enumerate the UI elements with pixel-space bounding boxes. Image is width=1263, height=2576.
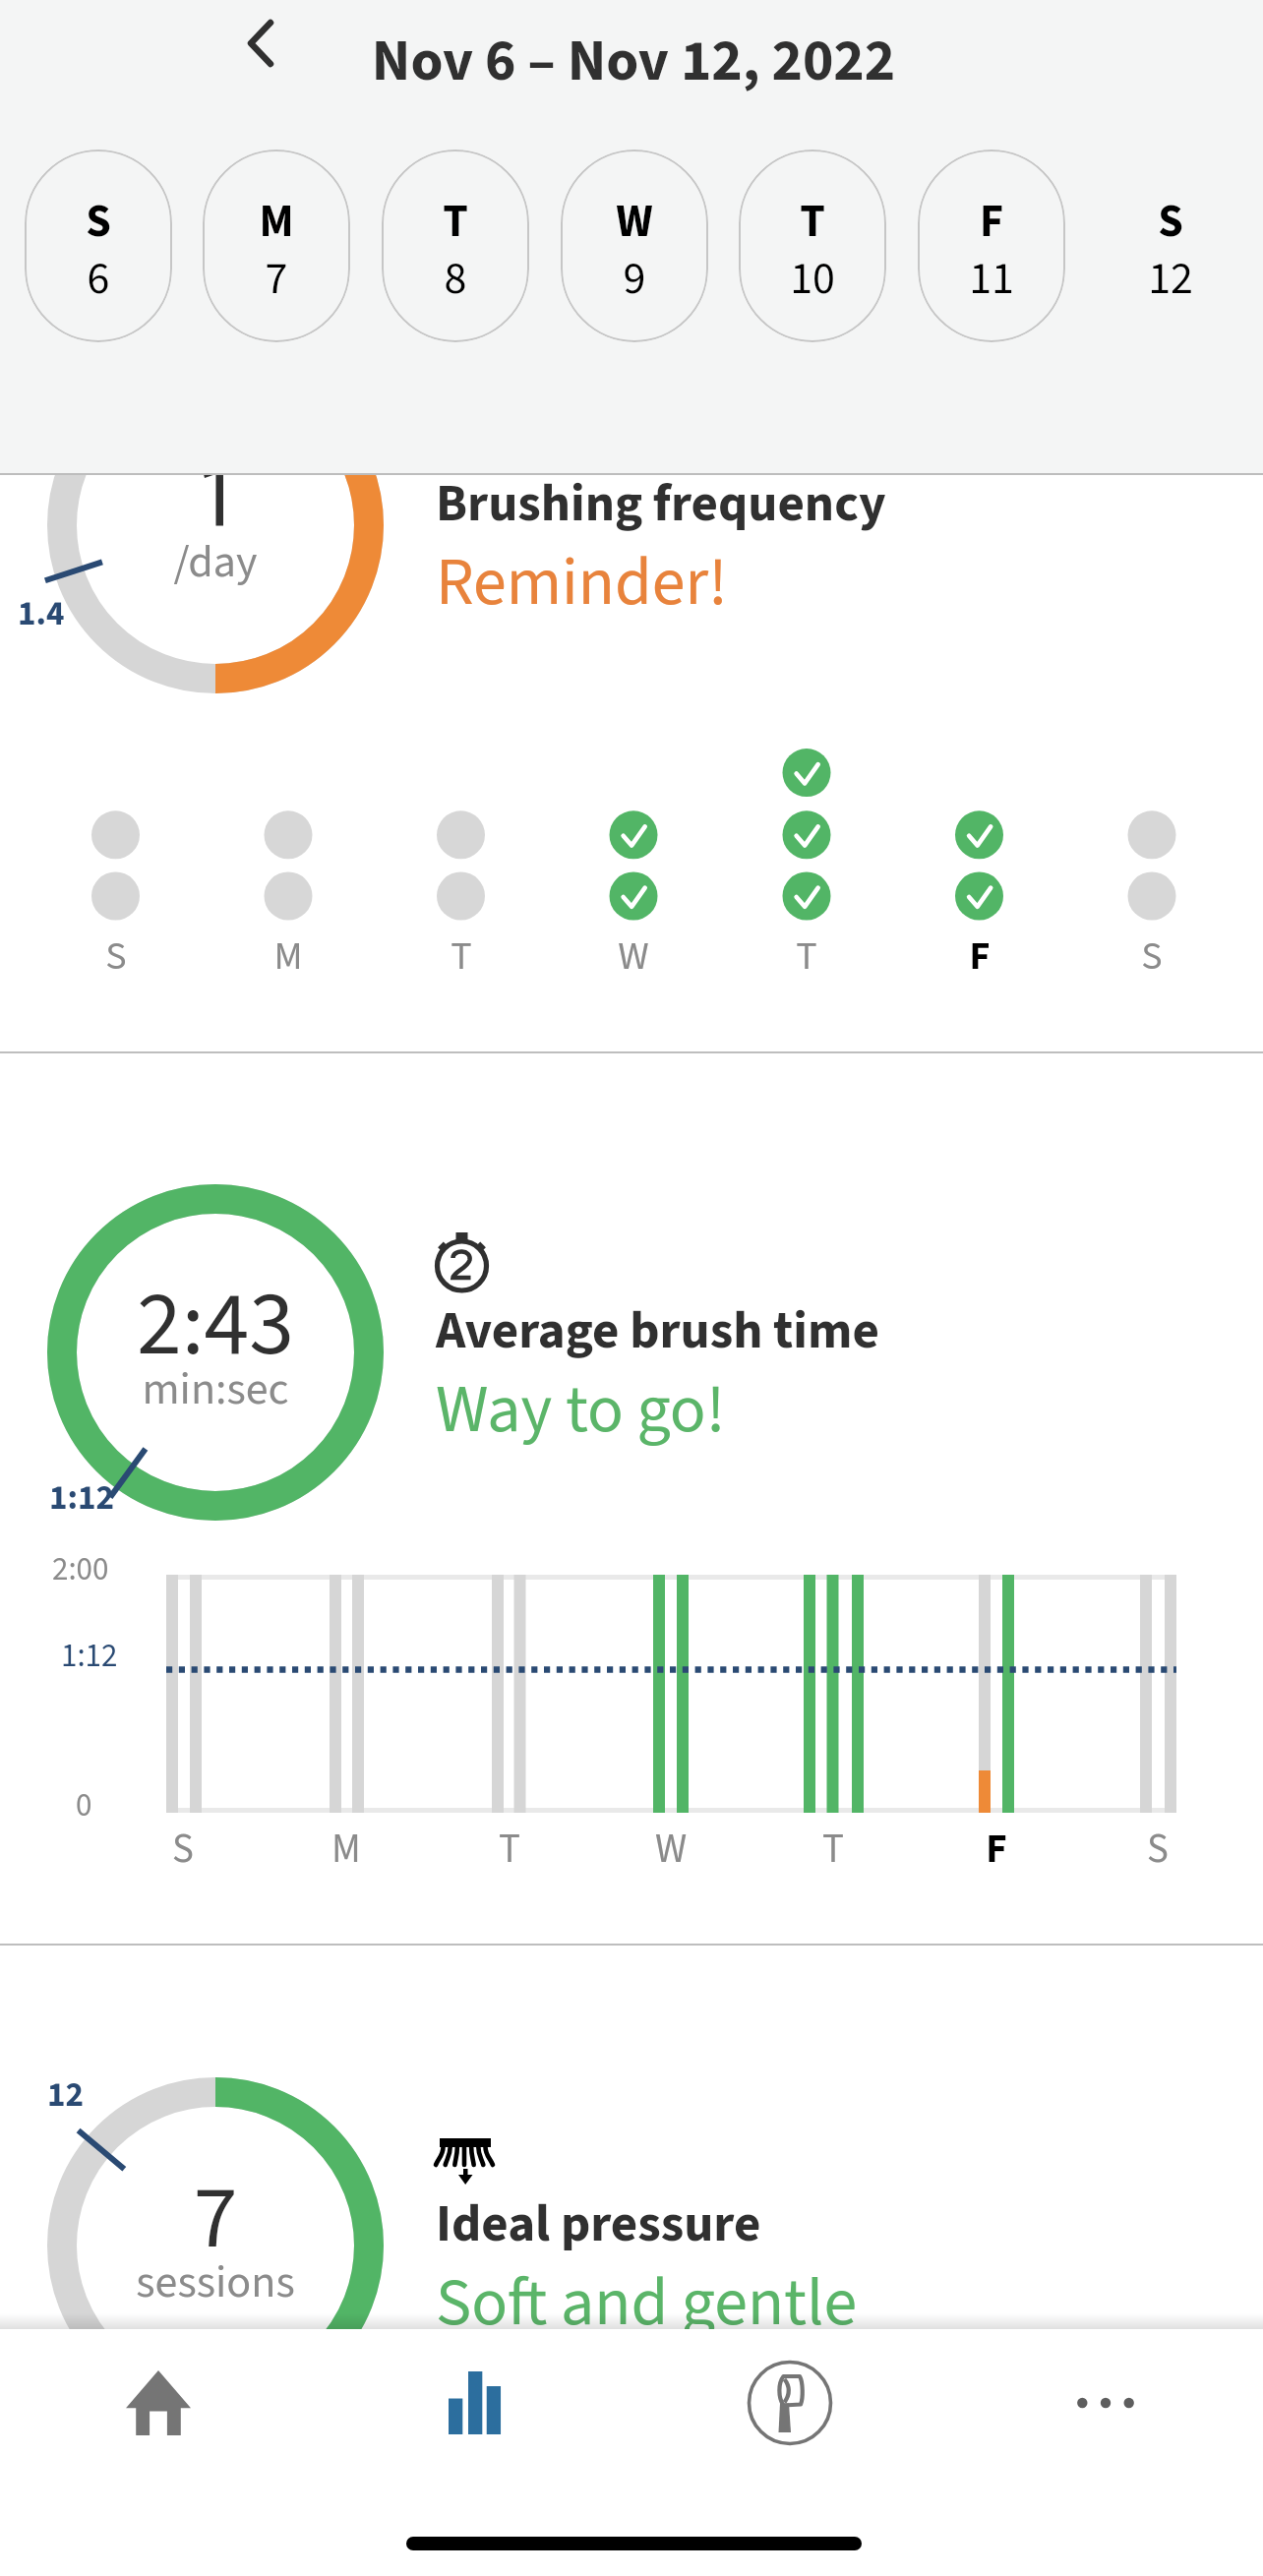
staticText: M — [51, 1821, 641, 1878]
staticText: S — [0, 190, 393, 255]
staticText: Nov 6 – Nov 12, 2022 — [338, 20, 929, 103]
staticText: S — [0, 929, 411, 985]
staticText: T — [166, 929, 756, 985]
staticText: 1:12 — [49, 1473, 114, 1523]
staticText: 2:00 — [52, 1546, 109, 1592]
staticText: Reminder! — [436, 535, 728, 630]
staticText: T — [511, 929, 1102, 985]
staticText: 8 — [160, 247, 751, 312]
button[interactable] — [1097, 150, 1244, 342]
staticText: T — [214, 1821, 805, 1878]
staticText: Soft and gentle — [436, 2255, 858, 2351]
staticText: S — [875, 190, 1263, 255]
staticText: 2:43 — [0, 1261, 511, 1390]
staticText: Brushing frequency — [436, 467, 886, 541]
button[interactable] — [382, 150, 529, 342]
staticText: Way to go! — [436, 1362, 726, 1458]
button[interactable]: Statistics — [316, 2329, 631, 2477]
button[interactable]: Back — [207, 22, 297, 112]
button[interactable]: Home — [0, 2329, 316, 2477]
staticText: 12 — [47, 2070, 84, 2120]
staticText: Ideal pressure — [436, 2187, 761, 2261]
staticText: /day — [0, 530, 511, 595]
staticText: F — [696, 190, 1263, 255]
staticText: S — [863, 1821, 1263, 1878]
staticText: 6 — [0, 247, 393, 312]
staticText: W — [338, 929, 929, 985]
button[interactable]: Brush head — [631, 2329, 947, 2477]
button[interactable] — [739, 150, 886, 342]
staticText: W — [376, 1821, 966, 1878]
staticText: 1:12 — [61, 1633, 118, 1679]
staticText: S — [857, 929, 1263, 985]
staticText: 7 — [0, 2156, 511, 2282]
staticText: 0 — [76, 1782, 92, 1828]
staticText: Average brush time — [436, 1294, 879, 1368]
staticText: 10 — [517, 247, 1108, 312]
staticText: 12 — [875, 247, 1263, 312]
staticText: T — [160, 190, 751, 255]
staticText: T — [517, 190, 1108, 255]
staticText: sessions — [0, 2250, 511, 2315]
button[interactable] — [25, 150, 172, 342]
button[interactable] — [561, 150, 708, 342]
staticText: min:sec — [0, 1357, 511, 1422]
staticText: M — [0, 190, 571, 255]
staticText: 1.4 — [18, 589, 65, 638]
button[interactable]: More — [947, 2329, 1263, 2477]
staticText: 11 — [696, 247, 1263, 312]
staticText: F — [701, 1821, 1263, 1878]
staticText: 7 — [0, 247, 571, 312]
staticText: 9 — [339, 247, 930, 312]
button[interactable] — [203, 150, 350, 342]
staticText: S — [0, 1821, 478, 1878]
staticText: F — [685, 929, 1263, 985]
button[interactable] — [918, 150, 1065, 342]
staticText: W — [339, 190, 930, 255]
staticText: T — [538, 1821, 1128, 1878]
staticText: M — [0, 929, 583, 985]
